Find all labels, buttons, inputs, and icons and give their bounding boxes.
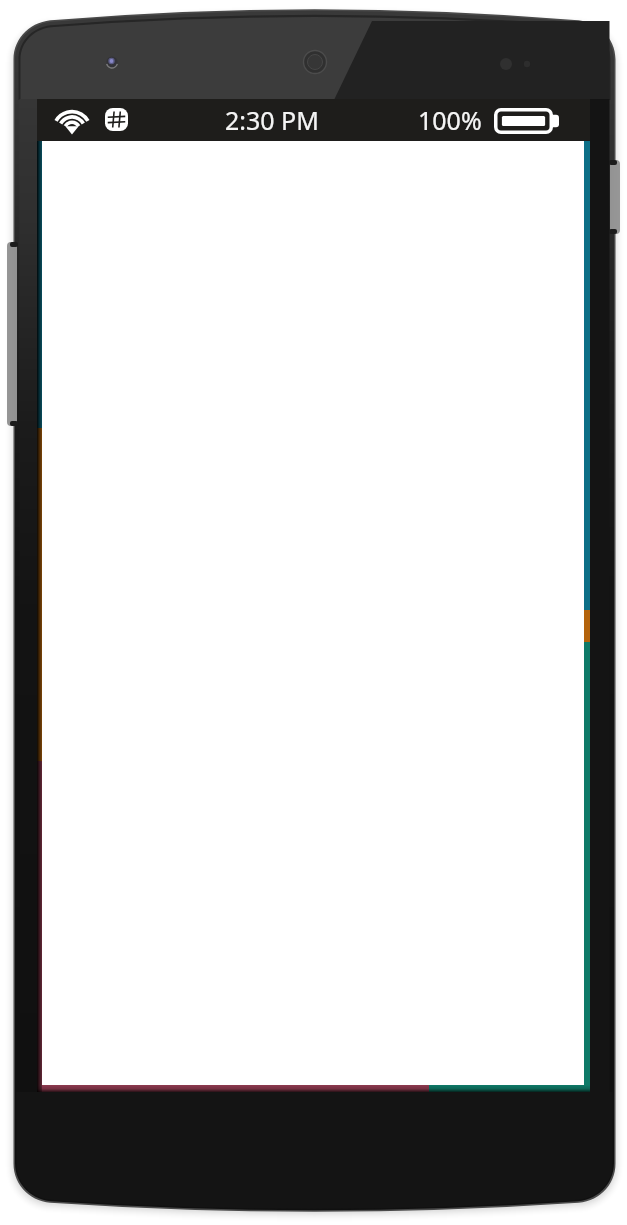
other: Battery full [494,108,559,134]
other: Wi-Fi [53,107,91,134]
staticText: 100% [418,103,482,137]
staticText: 2:30 PM [225,103,319,137]
other: Display settings [105,108,128,131]
